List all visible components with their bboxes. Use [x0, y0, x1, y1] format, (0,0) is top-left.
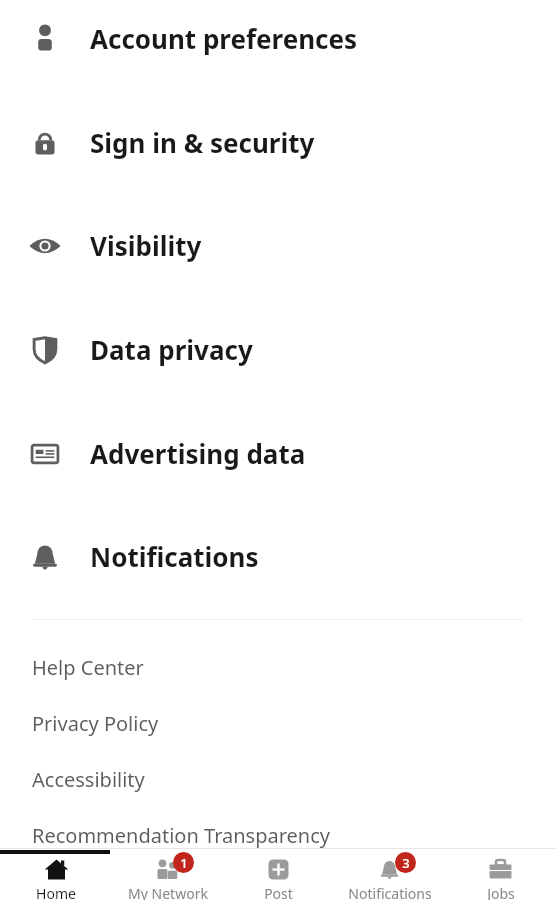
staticText: Account preferences [90, 21, 358, 56]
button[interactable]: Visibility [0, 203, 556, 287]
staticText: Advertising data [90, 436, 306, 471]
button[interactable]: Recommendation Transparency [0, 809, 556, 861]
button[interactable]: Sign in & security [0, 100, 556, 184]
staticText: Privacy Policy [32, 710, 159, 737]
staticText: Data privacy [90, 332, 253, 367]
staticText: 3 [402, 854, 410, 872]
button[interactable]: Data privacy [0, 307, 556, 391]
button[interactable]: Post [223, 856, 334, 900]
staticText: Notifications [348, 884, 432, 900]
staticText: Notifications [90, 539, 259, 574]
button[interactable]: Jobs [445, 856, 556, 900]
staticText: Recommendation Transparency [32, 822, 330, 849]
button[interactable]: 3 [334, 856, 445, 900]
button[interactable]: Privacy Policy [0, 697, 556, 749]
staticText: Visibility [90, 228, 202, 263]
button[interactable]: Advertising data [0, 411, 556, 495]
staticText: Home [36, 884, 76, 900]
button[interactable]: 1 [112, 856, 223, 900]
staticText: Jobs [487, 884, 515, 900]
staticText: Sign in & security [90, 125, 315, 160]
staticText: Help Center [32, 654, 144, 681]
staticText: My Network [128, 884, 208, 900]
staticText: Post [264, 884, 293, 900]
staticText: 1 [180, 854, 188, 872]
staticText: Accessibility [32, 766, 145, 793]
button[interactable]: Notifications [0, 514, 556, 598]
button[interactable]: Accessibility [0, 753, 556, 805]
button[interactable]: Help Center [0, 641, 556, 693]
button[interactable]: Account preferences [0, 0, 556, 80]
button[interactable]: Home [0, 856, 112, 900]
